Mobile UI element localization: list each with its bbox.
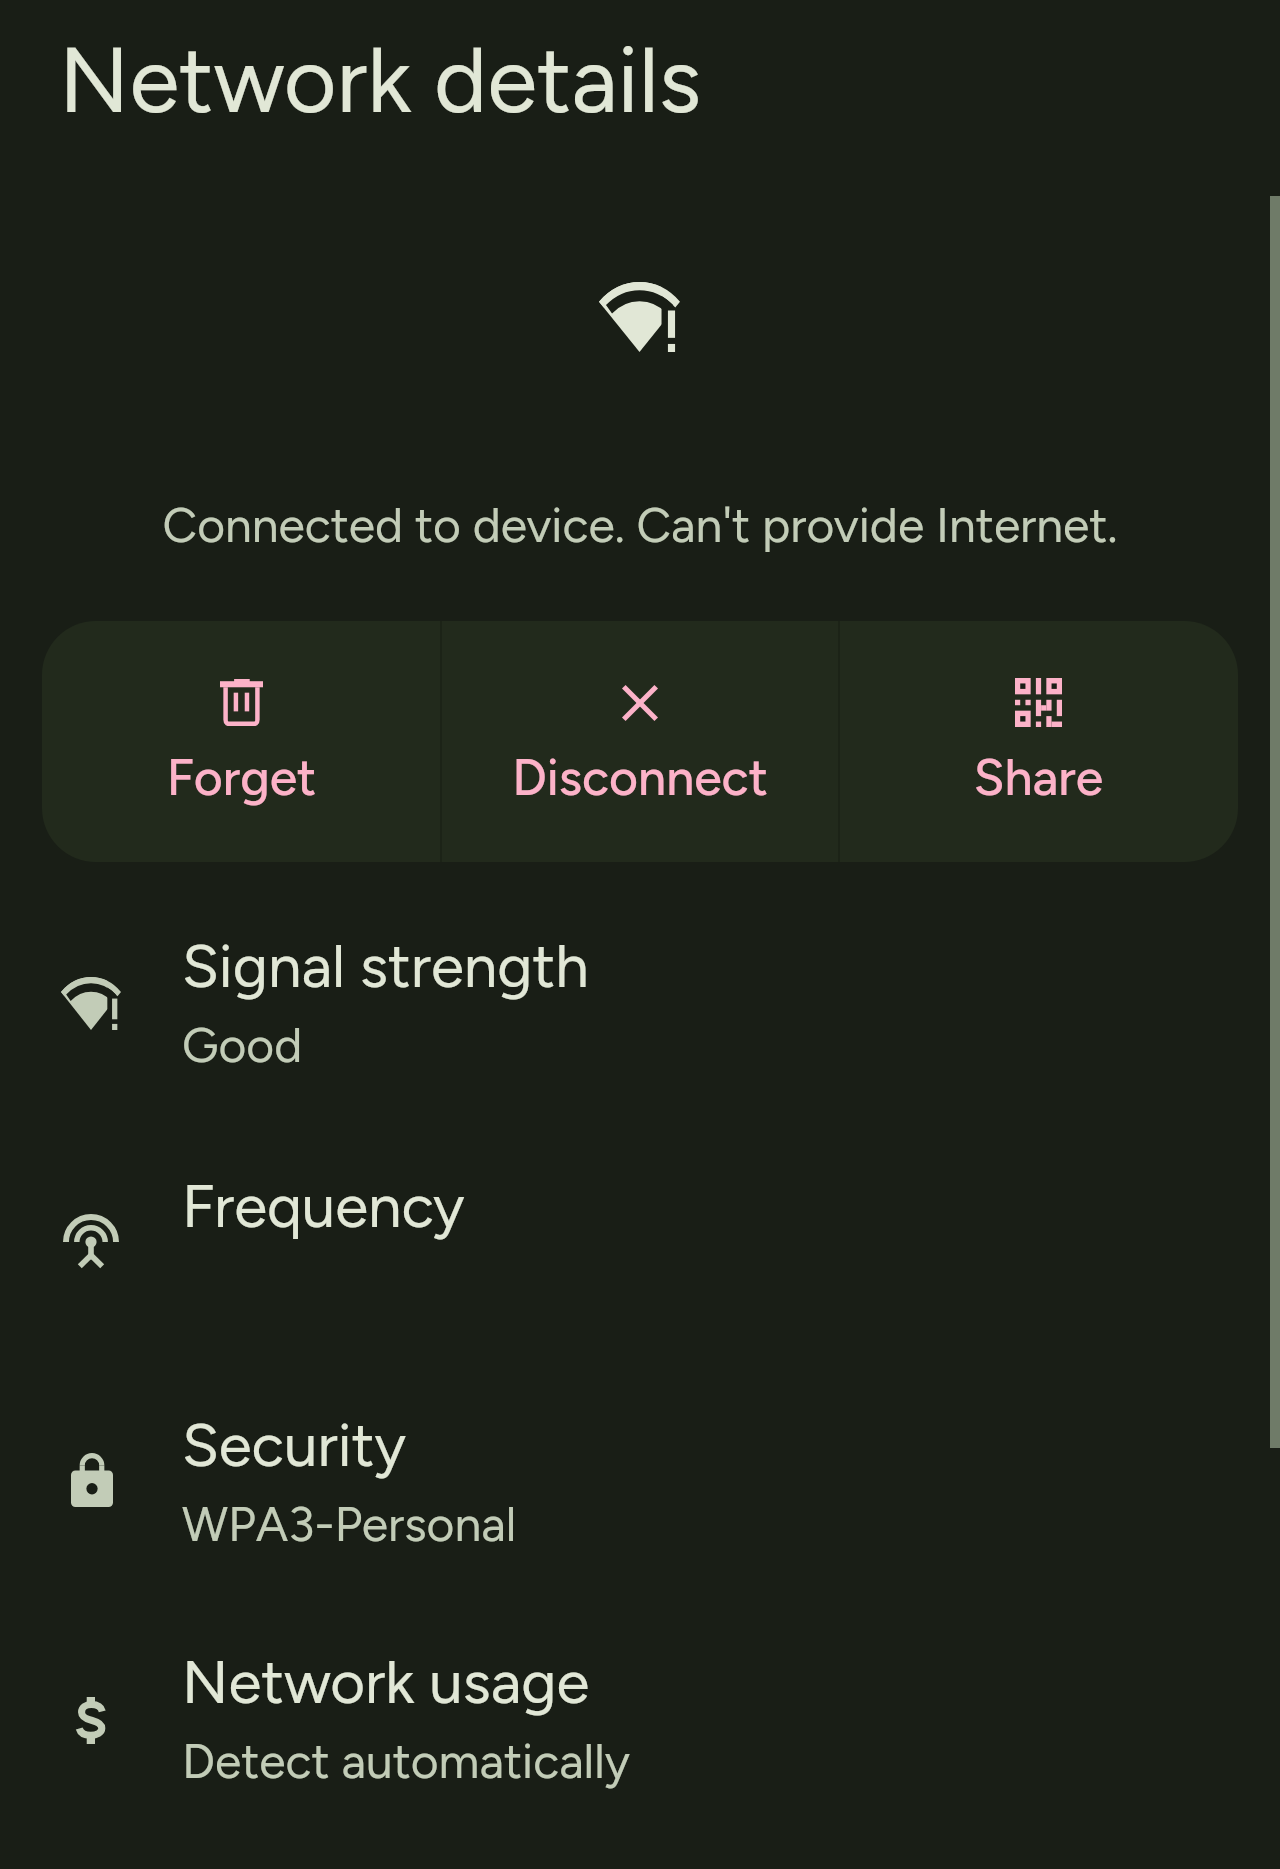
button[interactable]: Security bbox=[0, 1386, 1280, 1625]
staticText: Frequency bbox=[182, 1170, 465, 1242]
staticText: Detect automatically bbox=[182, 1732, 630, 1790]
staticText: Signal strength bbox=[182, 930, 589, 1002]
staticText: WPA3-Personal bbox=[182, 1495, 517, 1553]
staticText: Good bbox=[182, 1016, 303, 1074]
staticText: Network details bbox=[59, 26, 702, 135]
button[interactable]: Signal strength bbox=[0, 907, 1280, 1146]
staticText: Share bbox=[839, 747, 1238, 807]
staticText: Disconnect bbox=[441, 747, 839, 807]
button[interactable]: Share bbox=[839, 621, 1238, 862]
button[interactable]: Frequency bbox=[0, 1147, 1280, 1386]
staticText: Network usage bbox=[182, 1646, 590, 1718]
staticText: Forget bbox=[42, 747, 441, 807]
staticText: Security bbox=[182, 1409, 406, 1481]
staticText: Connected to device. Can't provide Inter… bbox=[0, 496, 1280, 554]
button[interactable]: Network usage bbox=[0, 1623, 1280, 1862]
button[interactable]: Forget bbox=[42, 621, 441, 862]
button[interactable]: Disconnect bbox=[441, 621, 839, 862]
